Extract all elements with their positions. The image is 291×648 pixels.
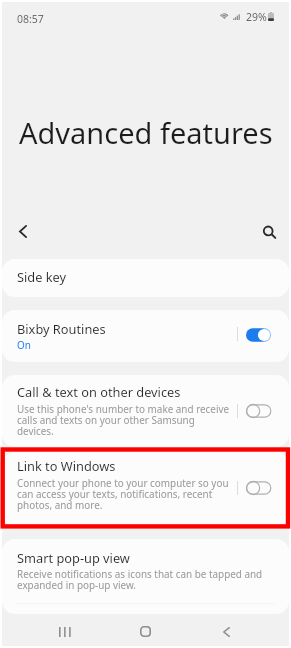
button[interactable]: Bixby Routines toggle, on [246,328,272,342]
button[interactable] [2,539,289,614]
staticText: Use this phone's number to make and rece… [17,402,230,438]
staticText: Smart pop-up view [17,549,130,566]
button[interactable]: Toggle, off [246,481,272,495]
staticText: Side key [17,268,67,285]
button[interactable] [2,375,289,447]
button[interactable] [2,452,289,526]
staticText: Link to Windows [17,457,116,474]
button[interactable] [2,310,289,362]
staticText: Call & text on other devices [17,383,181,400]
staticText: Bixby Routines [17,320,106,337]
button[interactable]: Home [128,614,162,648]
button[interactable]: Toggle, off [246,404,272,418]
staticText: Connect your phone to your computer so y… [17,476,229,512]
staticText: Receive notifications as icons that can … [17,567,263,592]
button[interactable]: Recent apps [47,615,81,648]
staticText: 29% [246,10,267,24]
button[interactable]: Search [254,217,284,247]
button[interactable] [2,259,289,297]
staticText: 08:57 [17,12,44,26]
button[interactable]: Back [209,615,243,648]
staticText: Advanced features [19,113,273,152]
staticText: On [17,338,31,351]
button[interactable]: Navigate up [8,216,38,246]
